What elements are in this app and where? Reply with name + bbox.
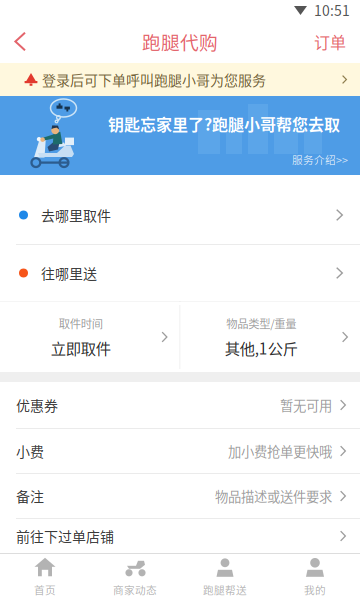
staticText: 服务介绍>> [292,152,348,167]
staticText: 小费 [16,441,44,461]
button[interactable]: 小费 [0,429,360,473]
button[interactable]: 物品类型/重量 [180,301,360,372]
staticText: 立即取件 [51,337,111,359]
button[interactable]: 往哪里送 [0,245,360,301]
staticText: 物品描述或送件要求 [215,486,332,506]
button[interactable]: 优惠券 [0,382,360,428]
staticText: 取件时间 [59,315,103,332]
staticText: 登录后可下单呼叫跑腿小哥为您服务 [42,69,266,90]
staticText: 钥匙忘家里了?跑腿小哥帮您去取 [108,112,340,135]
button[interactable]: 前往下过单店铺 [0,519,360,553]
button[interactable]: 去哪里取件 [0,186,360,244]
staticText: 其他,1公斤 [225,337,298,359]
staticText: 往哪里送 [41,263,97,283]
staticText: 首页 [34,582,56,597]
staticText: 去哪里取件 [41,205,111,225]
staticText: 暂无可用 [280,395,332,415]
button[interactable]: 备注 [0,474,360,518]
button[interactable]: 商家动态 [90,554,180,600]
staticText: 跑腿帮送 [203,582,247,597]
button[interactable]: 取件时间 [0,301,179,372]
staticText: 10:51 [314,0,350,20]
staticText: 物品类型/重量 [226,315,296,332]
button[interactable]: 服务介绍>> [292,152,360,167]
staticText: 商家动态 [113,582,157,597]
staticText: 跑腿代购 [142,28,218,55]
button[interactable]: 跑腿帮送 [180,554,270,600]
staticText: 优惠券 [16,395,58,415]
button[interactable]: 首页 [0,554,90,600]
staticText: 备注 [16,486,44,506]
button[interactable]: 我的 [270,554,360,600]
button[interactable]: 返回 [0,20,41,63]
staticText: 加小费抢单更快哦 [228,441,332,461]
button[interactable]: 登录后可下单呼叫跑腿小哥为您服务 [0,63,360,96]
staticText: 订单 [314,30,346,53]
staticText: 我的 [304,582,326,597]
staticText: 前往下过单店铺 [16,526,114,546]
button[interactable]: 订单 [300,20,360,63]
